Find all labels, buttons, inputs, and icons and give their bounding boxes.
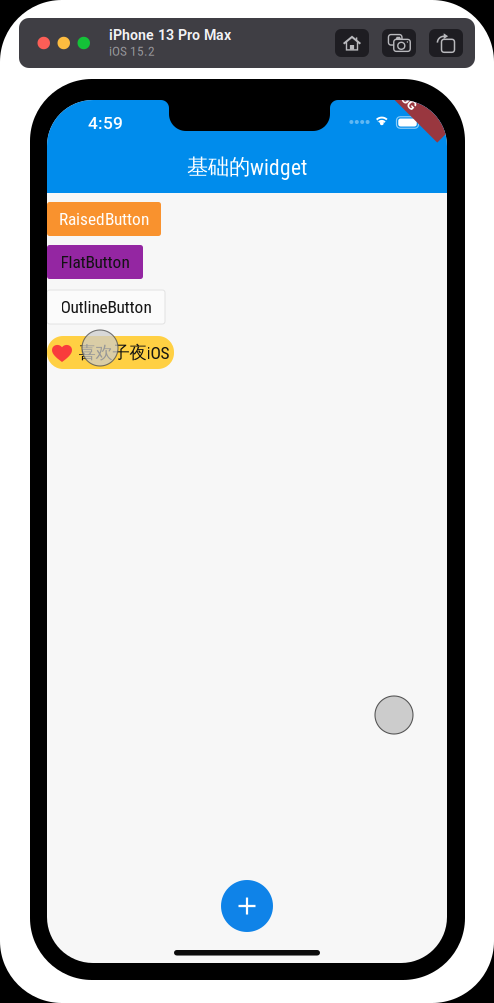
- staticText: 喜欢子夜iOS: [78, 342, 169, 363]
- button[interactable]: RaisedButton: [47, 202, 161, 236]
- staticText: iOS 15.2: [109, 43, 155, 59]
- staticText: 基础的widget: [187, 154, 307, 180]
- button[interactable]: Rotate: [429, 29, 463, 57]
- button[interactable]: 喜欢子夜iOS: [47, 336, 174, 369]
- staticText: OutlineButton: [60, 297, 151, 317]
- staticText: DEBUG: [384, 88, 424, 103]
- button[interactable]: OutlineButton: [47, 290, 165, 324]
- button[interactable]: FlatButton: [47, 245, 143, 279]
- button[interactable]: Screenshot: [382, 29, 416, 57]
- staticText: RaisedButton: [59, 209, 149, 229]
- staticText: 4:59: [88, 113, 123, 133]
- staticText: iPhone 13 Pro Max: [109, 27, 231, 43]
- button[interactable]: Home: [335, 29, 369, 57]
- staticText: FlatButton: [60, 252, 129, 272]
